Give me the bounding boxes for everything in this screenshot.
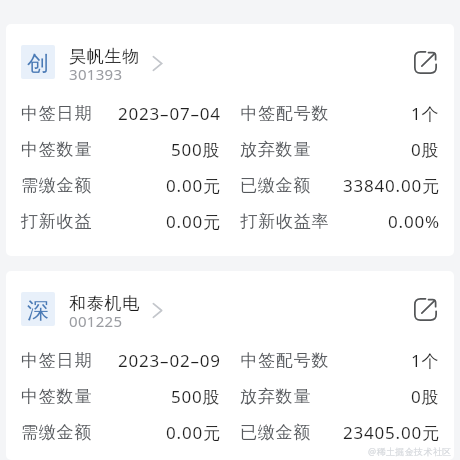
staticText: 已缴金额 xyxy=(240,175,312,196)
staticText: 和泰机电 xyxy=(69,293,141,314)
staticText: 昊帆生物 xyxy=(69,46,141,67)
staticText: 0.00元 xyxy=(166,210,221,233)
staticText: 23405.00元 xyxy=(343,421,440,444)
staticText: @稀土掘金技术社区 xyxy=(368,445,452,457)
staticText: 500股 xyxy=(171,138,221,161)
staticText: 0.00% xyxy=(388,210,440,233)
staticText: 中签日期 xyxy=(21,103,93,124)
staticText: 33840.00元 xyxy=(343,174,440,197)
staticText: 创 xyxy=(27,50,49,78)
staticText: 放弃数量 xyxy=(240,386,312,407)
staticText: 放弃数量 xyxy=(240,139,312,160)
staticText: 2023–07–04 xyxy=(118,102,221,125)
staticText: 301393 xyxy=(69,64,123,81)
staticText: 打新收益 xyxy=(21,211,93,232)
staticText: 打新收益率 xyxy=(240,211,329,232)
button[interactable]: Open in new window xyxy=(406,290,444,328)
staticText: 0股 xyxy=(411,385,440,408)
staticText: 2023–02–09 xyxy=(118,349,221,372)
staticText: 0股 xyxy=(411,138,440,161)
staticText: 0.00元 xyxy=(166,174,221,197)
staticText: 需缴金额 xyxy=(21,175,93,196)
staticText: 0.00元 xyxy=(166,421,221,444)
staticText: 中签数量 xyxy=(21,139,93,160)
staticText: 已缴金额 xyxy=(240,422,312,443)
staticText: 500股 xyxy=(171,385,221,408)
staticText: 中签日期 xyxy=(21,350,93,371)
staticText: 深 xyxy=(27,297,49,325)
staticText: 中签配号数 xyxy=(240,103,329,124)
button[interactable]: Open in new window xyxy=(406,43,444,81)
staticText: 1个 xyxy=(411,102,440,125)
staticText: 需缴金额 xyxy=(21,422,93,443)
staticText: 1个 xyxy=(411,349,440,372)
staticText: 中签配号数 xyxy=(240,350,329,371)
button[interactable]: 创 xyxy=(21,43,440,81)
staticText: 001225 xyxy=(69,311,123,328)
staticText: 中签数量 xyxy=(21,386,93,407)
button[interactable]: 深 xyxy=(21,290,440,328)
